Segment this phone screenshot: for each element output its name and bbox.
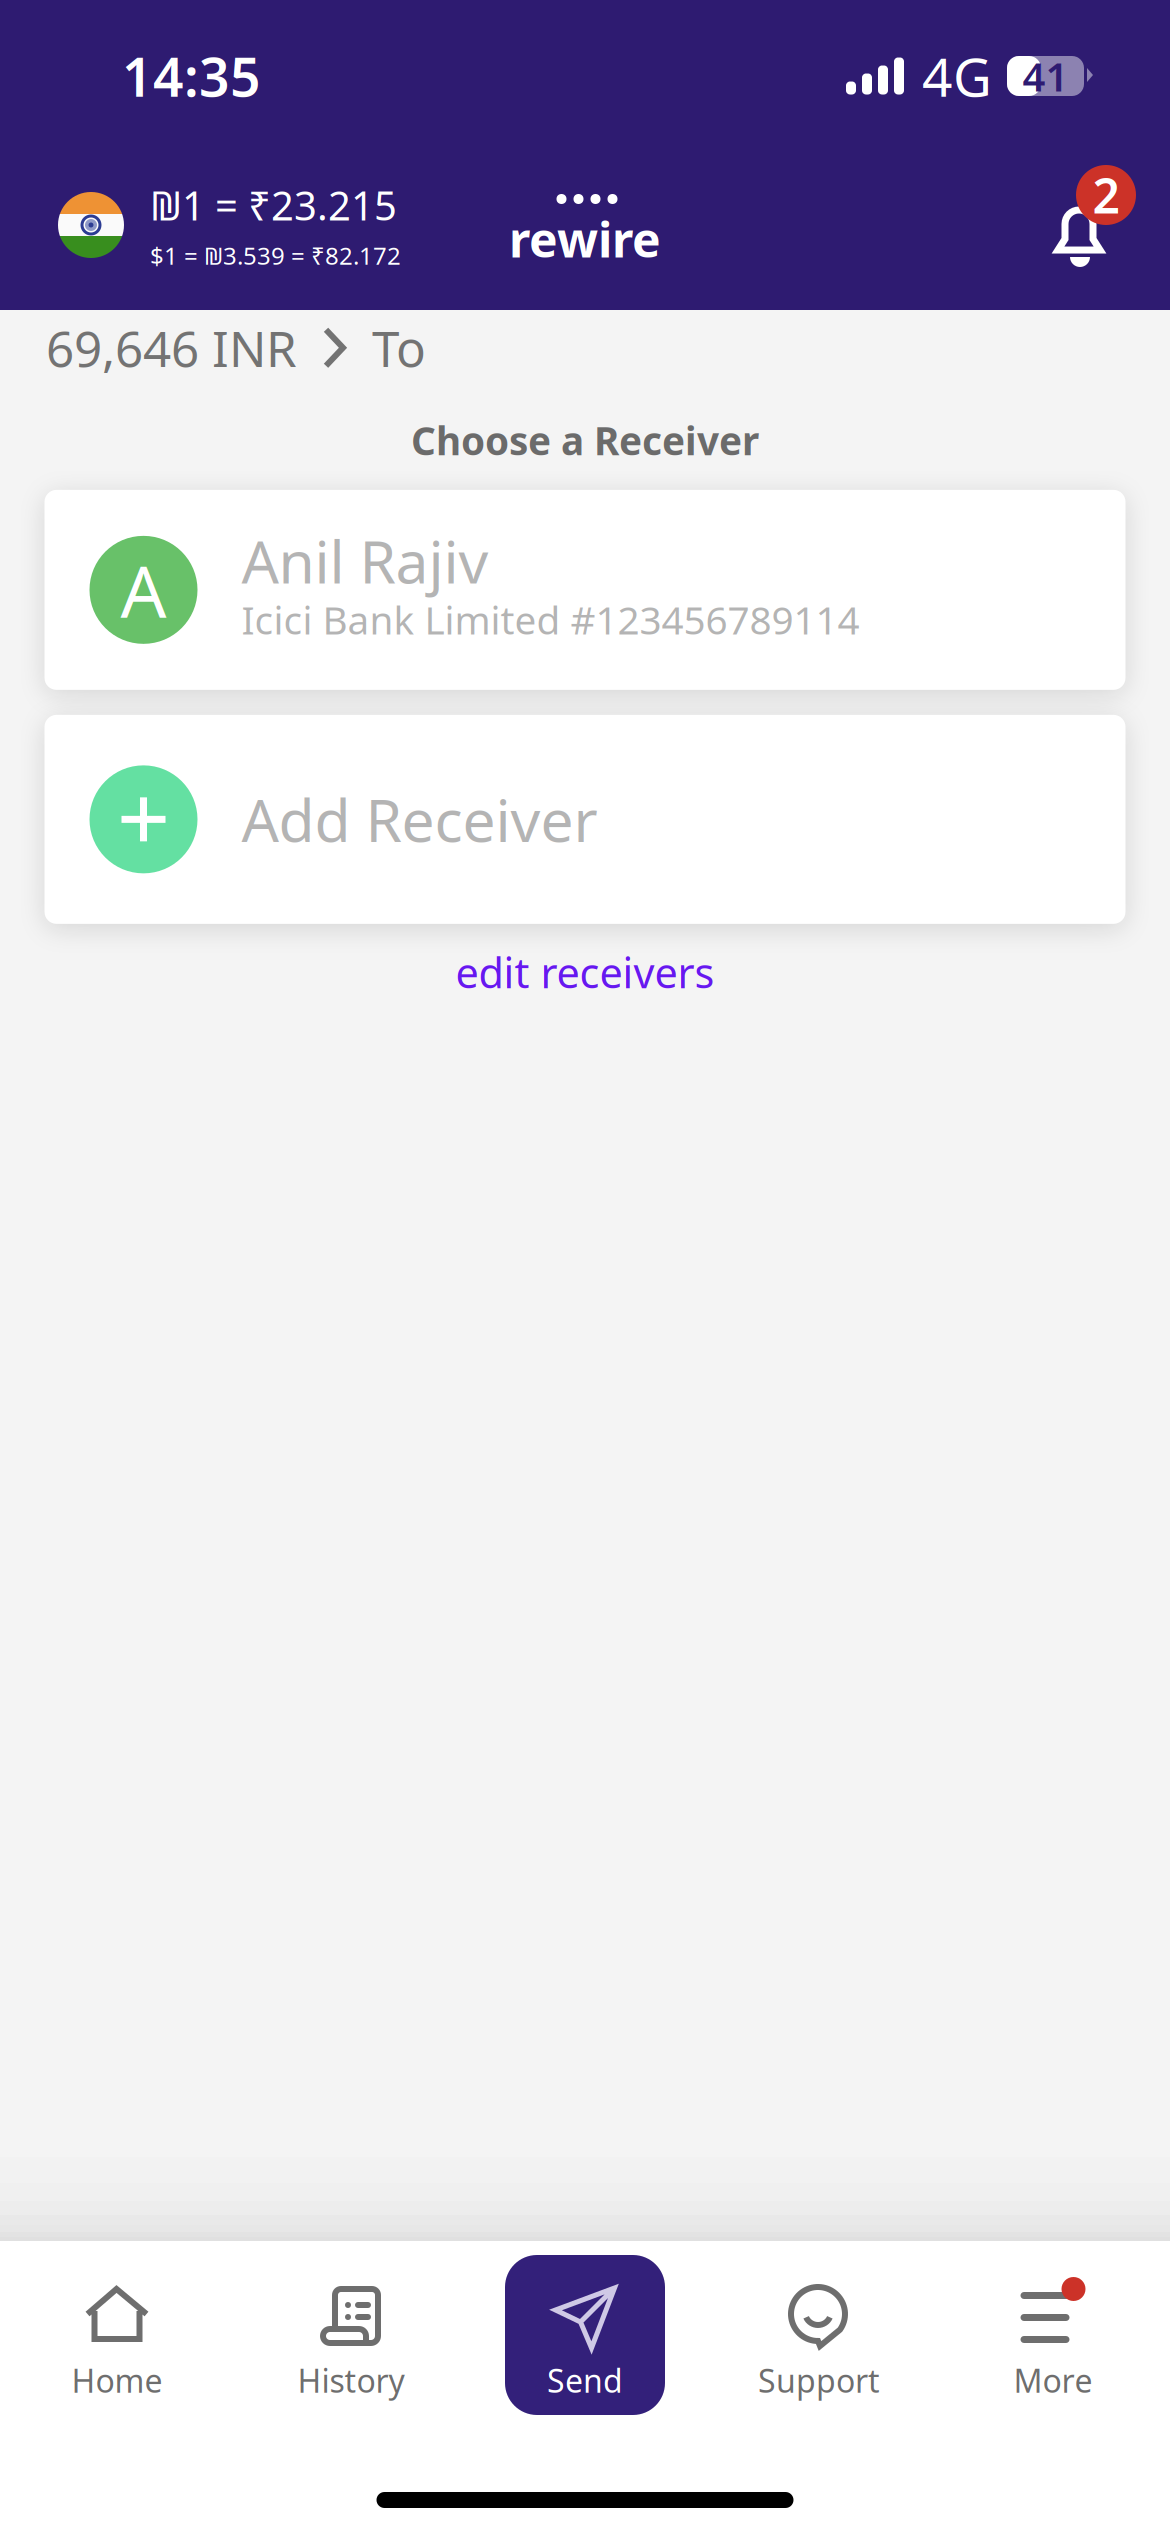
staticText: 14:35: [122, 41, 261, 111]
button[interactable]: Home: [7, 2241, 227, 2416]
staticText: 41: [1022, 49, 1068, 102]
staticText: Anil Rajiv: [241, 522, 488, 600]
button[interactable]: Support: [709, 2241, 929, 2416]
button[interactable]: History: [241, 2241, 461, 2416]
staticText: Home: [71, 2359, 162, 2401]
staticText: A: [120, 542, 166, 638]
staticText: $1 = ₪3.539 = ₹82.172: [150, 240, 401, 271]
button[interactable]: Add Receiver: [44, 715, 1125, 924]
staticText: Icici Bank Limited #123456789114: [241, 594, 859, 645]
staticText: Choose a Receiver: [411, 414, 759, 466]
staticText: Support: [758, 2359, 880, 2401]
staticText: More: [1013, 2359, 1092, 2401]
staticText: rewire: [509, 207, 661, 271]
staticText: To: [372, 315, 426, 380]
button[interactable]: Notifications: [1048, 179, 1138, 271]
button[interactable]: Send: [468, 2241, 702, 2416]
button[interactable]: A: [44, 490, 1125, 690]
staticText: History: [297, 2359, 404, 2401]
button[interactable]: edit receivers: [431, 931, 738, 1014]
staticText: 2: [1092, 163, 1119, 227]
staticText: Add Receiver: [241, 780, 597, 858]
staticText: ₪1 = ₹23.215: [150, 178, 397, 232]
staticText: edit receivers: [455, 945, 714, 1000]
staticText: 4G: [922, 41, 992, 111]
button[interactable]: More: [943, 2241, 1163, 2416]
staticText: 69,646 INR: [46, 315, 297, 380]
staticText: Send: [547, 2359, 623, 2401]
